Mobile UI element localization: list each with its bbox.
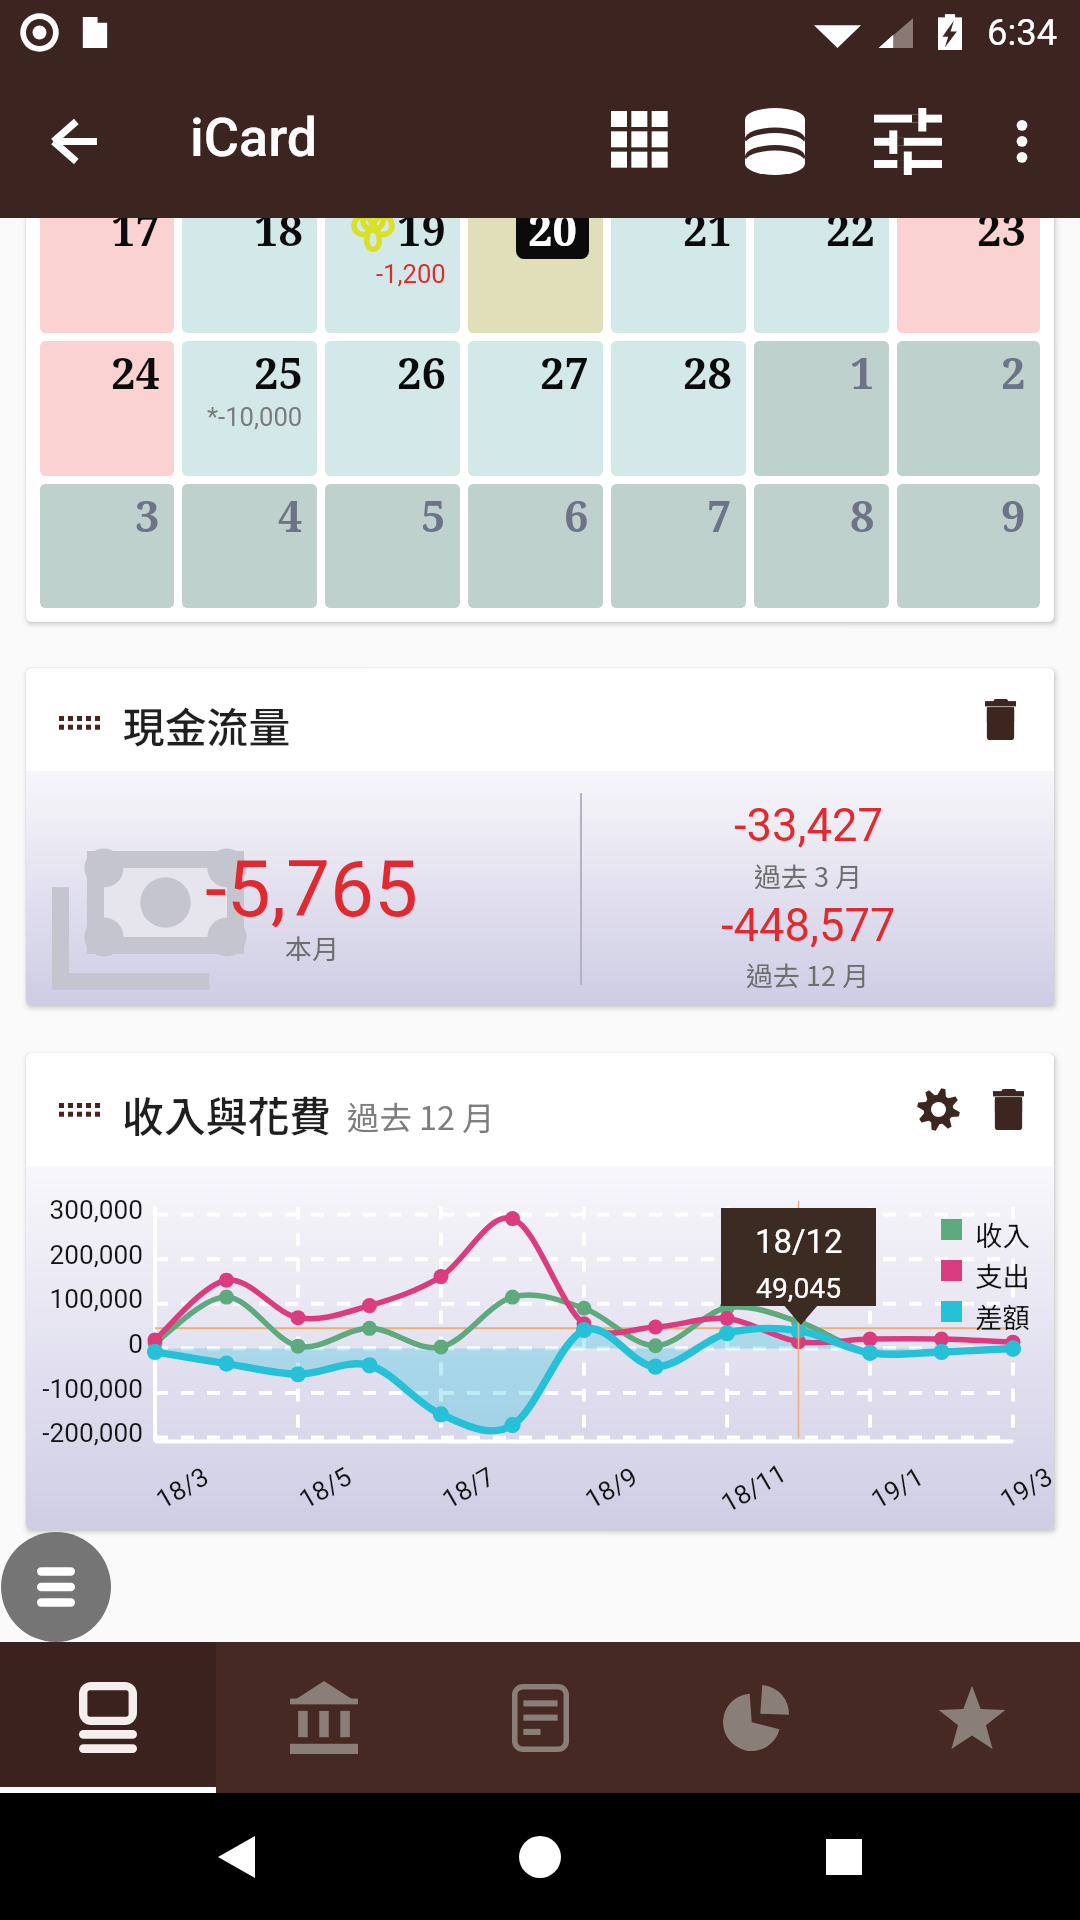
button[interactable]: Chart settings — [898, 1053, 979, 1166]
staticText: 22 — [826, 218, 875, 259]
staticText: -448,577 — [721, 899, 896, 952]
staticText: 21 — [683, 218, 732, 259]
staticText: 7 — [707, 486, 732, 545]
staticText: 18/12 — [755, 1222, 843, 1261]
staticText: 18/11 — [716, 1458, 792, 1519]
staticText: 26 — [397, 343, 446, 402]
button[interactable]: 4 — [182, 484, 317, 608]
button[interactable]: 21 — [611, 218, 746, 333]
staticText: 17 — [111, 218, 160, 259]
staticText: 18/3 — [151, 1461, 214, 1516]
staticText: 過去 12 月 — [347, 1092, 495, 1139]
staticText: 1 — [850, 343, 875, 402]
staticText: 200,000 — [49, 1240, 143, 1271]
button[interactable]: Delete card — [952, 668, 1049, 771]
button[interactable]: Filter settings — [855, 65, 960, 218]
button[interactable]: Accounts — [216, 1642, 432, 1793]
staticText: 23 — [977, 218, 1026, 259]
button[interactable]: 6 — [468, 484, 603, 608]
button[interactable]: Favorites — [864, 1642, 1080, 1793]
button[interactable]: Back — [218, 1836, 255, 1878]
staticText: 300,000 — [49, 1195, 143, 1226]
button[interactable]: 26 — [325, 341, 460, 476]
button[interactable]: 28 — [611, 341, 746, 476]
staticText: 18/9 — [580, 1461, 643, 1516]
staticText: 2 — [1001, 343, 1026, 402]
staticText: 6 — [564, 486, 589, 545]
button[interactable]: 3 — [40, 484, 174, 608]
staticText: 19/3 — [995, 1461, 1054, 1516]
button[interactable]: 8 — [754, 484, 889, 608]
staticText: -33,427 — [734, 799, 883, 852]
button[interactable]: Database — [722, 65, 827, 218]
staticText: 18/5 — [294, 1461, 357, 1516]
button[interactable]: Reports — [648, 1642, 864, 1793]
staticText: 過去 12 月 — [746, 955, 870, 994]
staticText: 49,045 — [756, 1272, 842, 1305]
button[interactable]: 1 — [754, 341, 889, 476]
button[interactable]: 7 — [611, 484, 746, 608]
button[interactable]: 9 — [897, 484, 1040, 608]
button[interactable]: Open menu — [1, 1532, 111, 1642]
button[interactable]: 23 — [897, 218, 1040, 333]
staticText: *-10,000 — [207, 402, 303, 432]
button[interactable]: 24 — [40, 341, 174, 476]
staticText: 現金流量 — [123, 694, 291, 755]
staticText: 過去 3 月 — [754, 856, 863, 895]
button[interactable]: 2 — [897, 341, 1040, 476]
staticText: 19/1 — [866, 1461, 929, 1516]
button[interactable]: 27 — [468, 341, 603, 476]
staticText: 4 — [278, 486, 303, 545]
button[interactable]: 22 — [754, 218, 889, 333]
staticText: 差額 — [975, 1296, 1031, 1336]
staticText: 27 — [540, 343, 589, 402]
staticText: 18 — [254, 218, 303, 259]
button[interactable]: 5 — [325, 484, 460, 608]
staticText: 25 — [254, 343, 303, 402]
button[interactable]: 20 — [468, 218, 603, 333]
button[interactable]: 17 — [40, 218, 174, 333]
staticText: 3 — [135, 486, 160, 545]
staticText: iCard — [190, 106, 318, 169]
button[interactable]: 25 — [182, 341, 317, 476]
staticText: 6:34 — [987, 11, 1058, 54]
staticText: 收入與花費 — [122, 1083, 332, 1144]
staticText: 28 — [683, 343, 732, 402]
staticText: 支出 — [975, 1255, 1031, 1295]
staticText: -5,765 — [205, 843, 419, 935]
button[interactable]: More options — [977, 65, 1067, 218]
staticText: 0 — [128, 1329, 143, 1360]
button[interactable]: Home — [519, 1836, 561, 1878]
staticText: 8 — [850, 486, 875, 545]
staticText: 24 — [111, 343, 160, 402]
button[interactable]: Dashboard — [0, 1642, 216, 1793]
staticText: -200,000 — [42, 1418, 143, 1449]
staticText: 20 — [528, 218, 577, 259]
staticText: 5 — [421, 486, 446, 545]
staticText: 19 — [397, 218, 446, 259]
staticText: 收入 — [975, 1214, 1031, 1254]
staticText: 本月 — [285, 928, 339, 967]
button[interactable]: Records — [432, 1642, 648, 1793]
button[interactable]: Back — [25, 65, 122, 218]
button[interactable]: 18 — [182, 218, 317, 333]
staticText: -100,000 — [42, 1374, 143, 1405]
button[interactable]: 19 — [325, 218, 460, 333]
staticText: -1,200 — [376, 259, 446, 289]
button[interactable]: Grid view — [589, 65, 694, 218]
staticText: 9 — [1001, 486, 1026, 545]
button[interactable]: Delete chart — [968, 1053, 1049, 1166]
staticText: 18/7 — [437, 1461, 500, 1516]
staticText: 100,000 — [49, 1284, 143, 1315]
